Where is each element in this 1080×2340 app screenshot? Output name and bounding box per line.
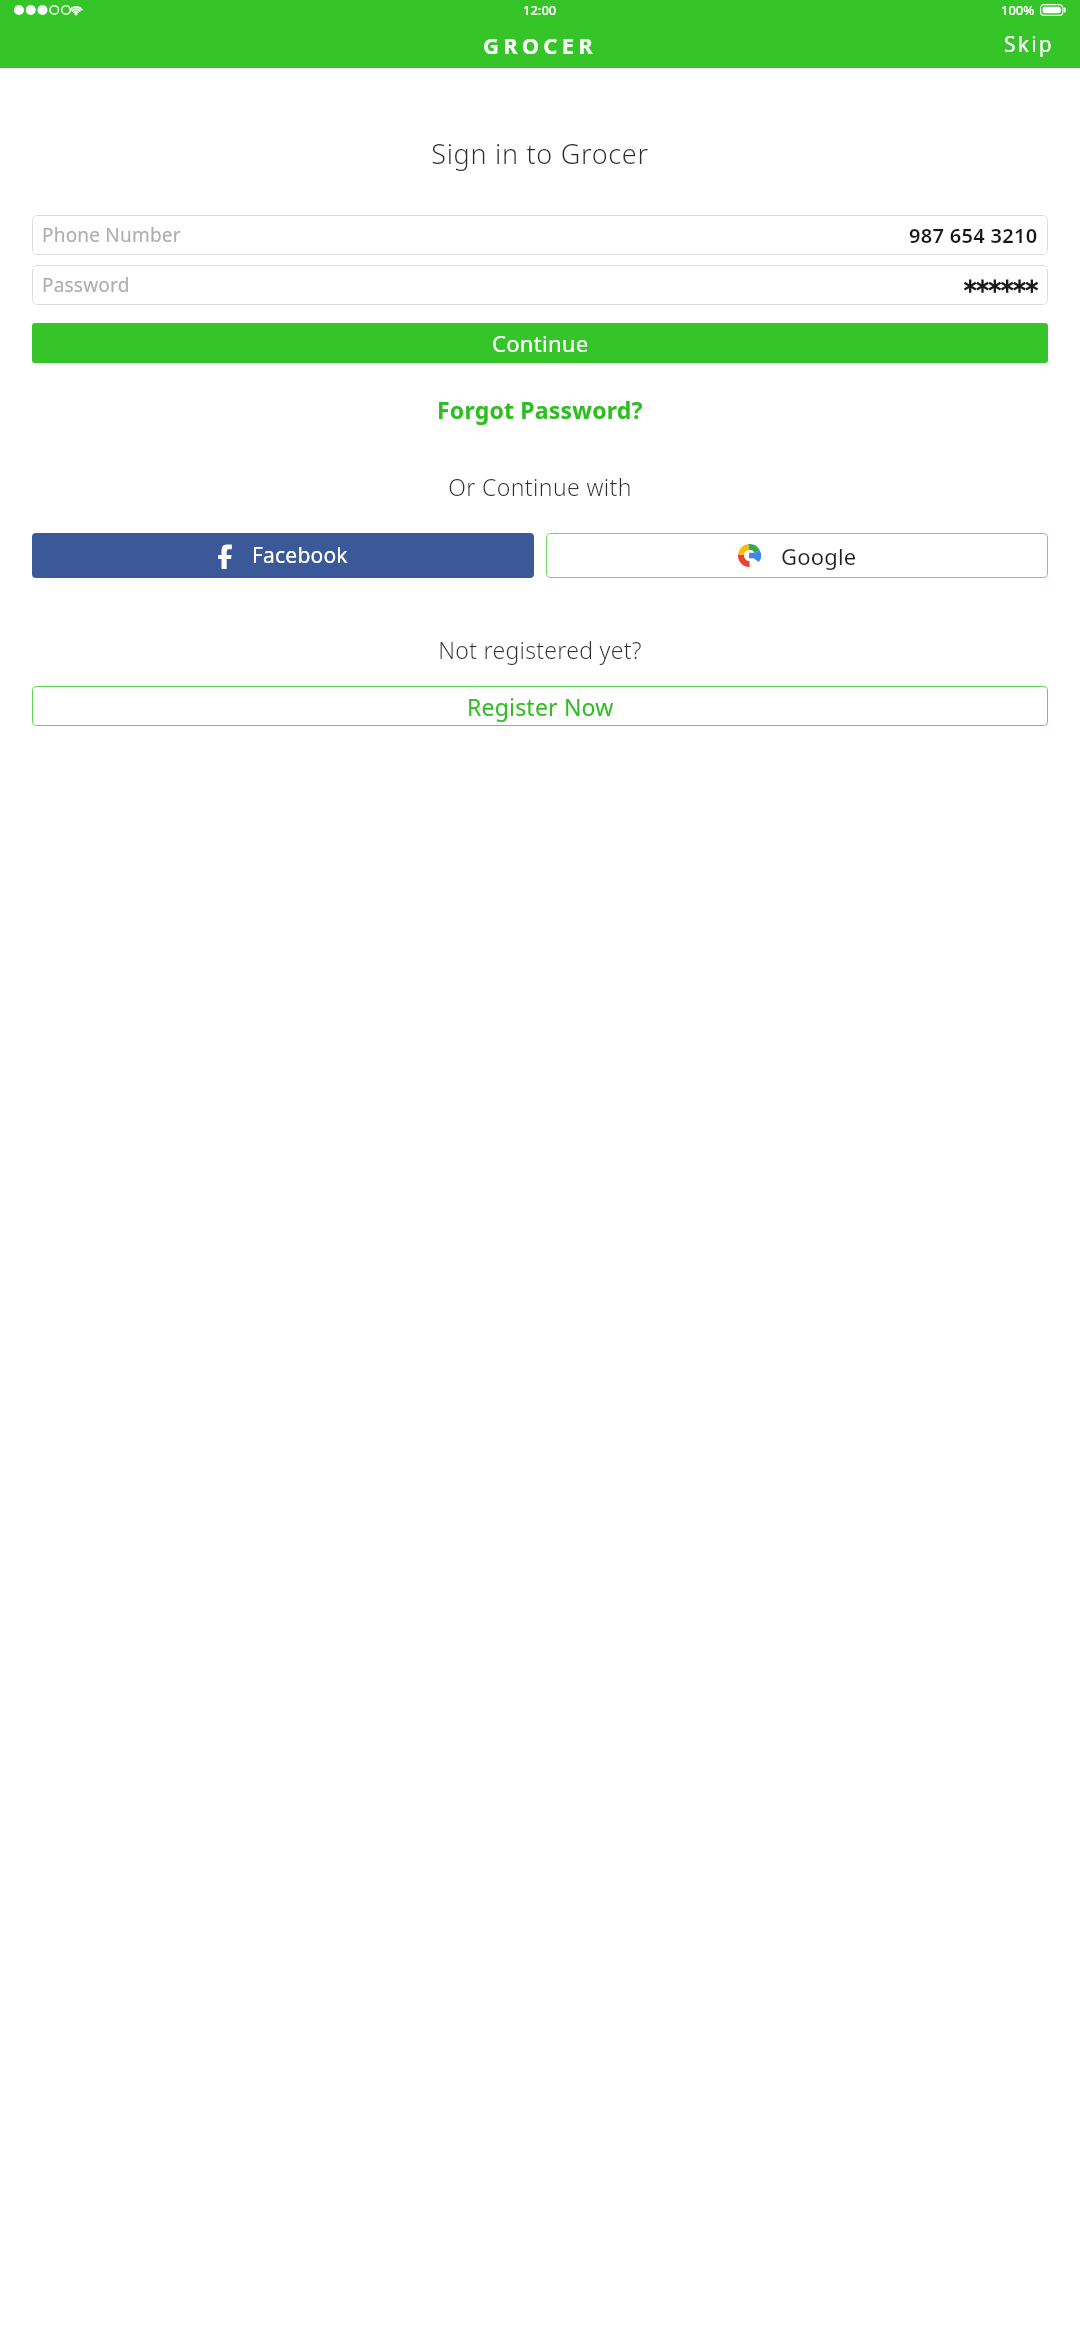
button[interactable]: Google [546,533,1048,578]
staticText: Facebook [252,541,348,570]
staticText: Password [42,272,130,298]
button[interactable]: Facebook [32,533,534,578]
button[interactable]: Register Now [32,686,1048,726]
staticText: GROCER [483,30,597,60]
button[interactable]: Continue [32,323,1048,363]
staticText: 987 654 3210 [909,222,1038,249]
staticText: Register Now [467,691,614,722]
button[interactable]: Phone Number [32,215,1048,255]
staticText: Continue [492,328,589,358]
staticText: Google [781,541,857,571]
staticText: Or Continue with [0,471,1080,502]
button[interactable]: Forgot Password? [427,388,653,431]
button[interactable]: Skip [1000,26,1058,63]
staticText: 12:00 [523,1,557,19]
button[interactable]: Password [32,265,1048,305]
staticText: Sign in to Grocer [0,135,1080,172]
staticText: 100% [1001,1,1035,19]
staticText: Phone Number [42,222,181,248]
staticText: Not registered yet? [0,634,1080,665]
